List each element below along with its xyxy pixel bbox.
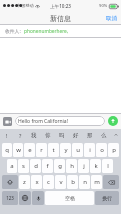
staticText: t: [52, 146, 55, 154]
staticText: f: [46, 162, 49, 170]
button[interactable]: f: [42, 159, 53, 173]
staticText: s: [22, 162, 25, 170]
button[interactable]: 我: [27, 129, 41, 141]
staticText: 你: [45, 132, 51, 139]
button[interactable]: b: [67, 175, 78, 189]
button[interactable]: Dictation: [32, 191, 44, 205]
staticText: e: [28, 146, 32, 154]
button[interactable]: 123: [2, 191, 18, 205]
staticText: q: [5, 146, 9, 154]
button[interactable]: j: [78, 159, 89, 173]
staticText: ?: [19, 132, 22, 139]
staticText: 90%: [99, 3, 108, 9]
button[interactable]: s: [18, 159, 29, 173]
staticText: p: [112, 146, 116, 154]
staticText: w: [16, 146, 21, 154]
button[interactable]: z: [19, 175, 30, 189]
staticText: r: [40, 146, 43, 154]
staticText: b: [71, 178, 75, 186]
button[interactable]: x: [31, 175, 42, 189]
staticText: 我: [31, 132, 37, 139]
staticText: m: [94, 178, 100, 186]
button[interactable]: g: [54, 159, 65, 173]
button[interactable]: 你: [41, 129, 55, 141]
button[interactable]: i: [84, 143, 95, 157]
button[interactable]: l: [102, 159, 113, 173]
staticText: Hello from California!: [18, 118, 69, 125]
staticText: d: [34, 162, 38, 170]
staticText: v: [59, 178, 63, 186]
button[interactable]: Backspace: [103, 175, 119, 189]
staticText: phonenumberhere,: [24, 28, 69, 35]
button[interactable]: Send: [108, 116, 118, 126]
staticText: 新信息: [50, 14, 71, 23]
staticText: 上午10:23: [50, 3, 71, 9]
button[interactable]: More candidates: [111, 129, 121, 141]
staticText: 123: [6, 195, 14, 201]
staticText: 空格: [65, 195, 75, 201]
button[interactable]: c: [43, 175, 54, 189]
staticText: n: [83, 178, 87, 186]
button[interactable]: 好: [69, 129, 83, 141]
button[interactable]: 么: [97, 129, 111, 141]
button[interactable]: y: [60, 143, 71, 157]
button[interactable]: k: [90, 159, 101, 173]
staticText: u: [76, 146, 80, 154]
button[interactable]: 换行: [95, 191, 119, 205]
staticText: 收件人:: [5, 28, 21, 35]
staticText: k: [94, 162, 98, 170]
staticText: 好: [73, 132, 79, 139]
staticText: y: [64, 146, 68, 154]
button[interactable]: d: [30, 159, 41, 173]
staticText: c: [47, 178, 50, 186]
button[interactable]: q: [2, 143, 12, 157]
button[interactable]: 空格: [45, 191, 94, 205]
button[interactable]: u: [72, 143, 83, 157]
button[interactable]: p: [108, 143, 119, 157]
button[interactable]: Hello from California!: [15, 116, 105, 126]
staticText: 中国移动: [17, 3, 34, 8]
staticText: j: [83, 162, 85, 170]
button[interactable]: e: [24, 143, 35, 157]
button[interactable]: Shift: [2, 175, 18, 189]
button[interactable]: w: [13, 143, 23, 157]
staticText: z: [23, 178, 26, 186]
staticText: x: [35, 178, 39, 186]
staticText: 吗: [59, 132, 65, 139]
button[interactable]: r: [36, 143, 47, 157]
staticText: o: [100, 146, 104, 154]
staticText: 那: [87, 132, 93, 139]
staticText: !: [6, 132, 8, 139]
staticText: 么: [101, 132, 107, 139]
button[interactable]: t: [48, 143, 59, 157]
button[interactable]: !: [0, 129, 13, 141]
button[interactable]: n: [79, 175, 90, 189]
button[interactable]: h: [66, 159, 77, 173]
staticText: i: [89, 146, 91, 154]
button[interactable]: 取消: [102, 12, 121, 25]
staticText: l: [107, 162, 109, 170]
button[interactable]: 那: [83, 129, 97, 141]
button[interactable]: a: [7, 159, 17, 173]
button[interactable]: m: [91, 175, 102, 189]
button[interactable]: Switch keyboard: [19, 191, 31, 205]
button[interactable]: 吗: [55, 129, 69, 141]
button[interactable]: v: [55, 175, 66, 189]
button[interactable]: Camera: [3, 117, 12, 126]
button[interactable]: o: [96, 143, 107, 157]
staticText: a: [10, 162, 14, 170]
staticText: g: [58, 162, 62, 170]
staticText: h: [70, 162, 74, 170]
staticText: 取消: [106, 15, 117, 22]
button[interactable]: 收件人:: [0, 25, 121, 38]
staticText: 换行: [102, 195, 112, 201]
button[interactable]: ?: [13, 129, 27, 141]
